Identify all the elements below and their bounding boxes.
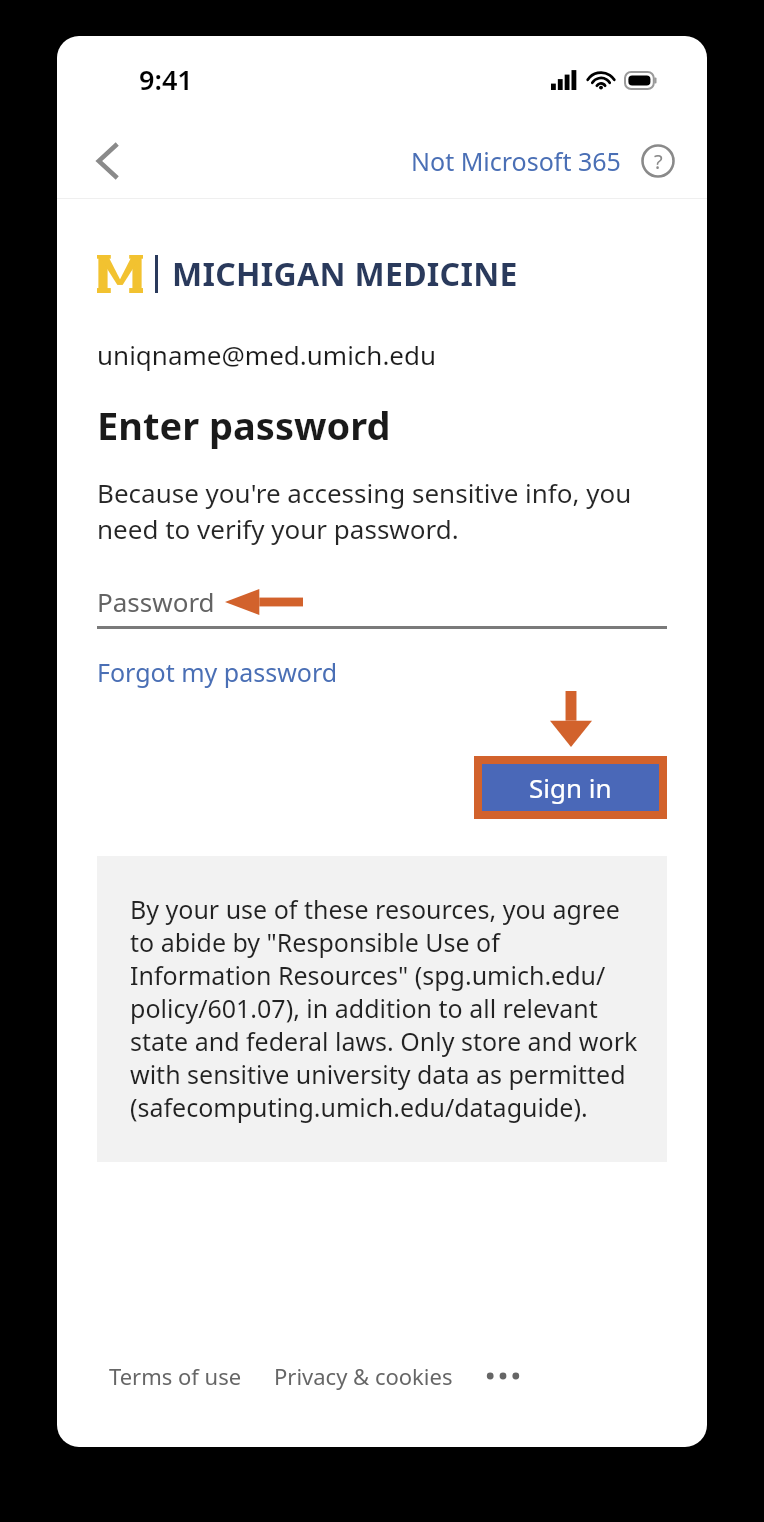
button[interactable]: Terms of use (109, 1355, 242, 1397)
button[interactable]: Privacy & cookies (274, 1355, 453, 1397)
staticText: ? (654, 148, 663, 175)
staticText: Privacy & cookies (274, 1361, 453, 1391)
staticText: Not Microsoft 365 (411, 144, 621, 178)
button[interactable]: Help (637, 140, 679, 182)
staticText: MICHIGAN MEDICINE (172, 252, 518, 296)
staticText: Terms of use (109, 1361, 242, 1391)
button[interactable]: More options (481, 1361, 525, 1391)
staticText: 9:41 (139, 61, 193, 98)
button[interactable]: Not Microsoft 365 (407, 136, 625, 186)
staticText: Password (97, 584, 215, 619)
staticText: Sign in (529, 770, 612, 805)
staticText: Forgot my password (97, 655, 338, 689)
staticText: Enter password (97, 399, 391, 451)
button[interactable]: Back (79, 132, 137, 190)
button[interactable]: Forgot my password (97, 655, 338, 689)
button[interactable]: Sign in (482, 764, 659, 811)
staticText: By your use of these resources, you agre… (130, 892, 647, 1124)
staticText: uniqname@med.umich.edu (97, 337, 437, 372)
staticText: Because you're accessing sensitive info,… (97, 475, 667, 547)
button[interactable]: Password (97, 578, 667, 624)
